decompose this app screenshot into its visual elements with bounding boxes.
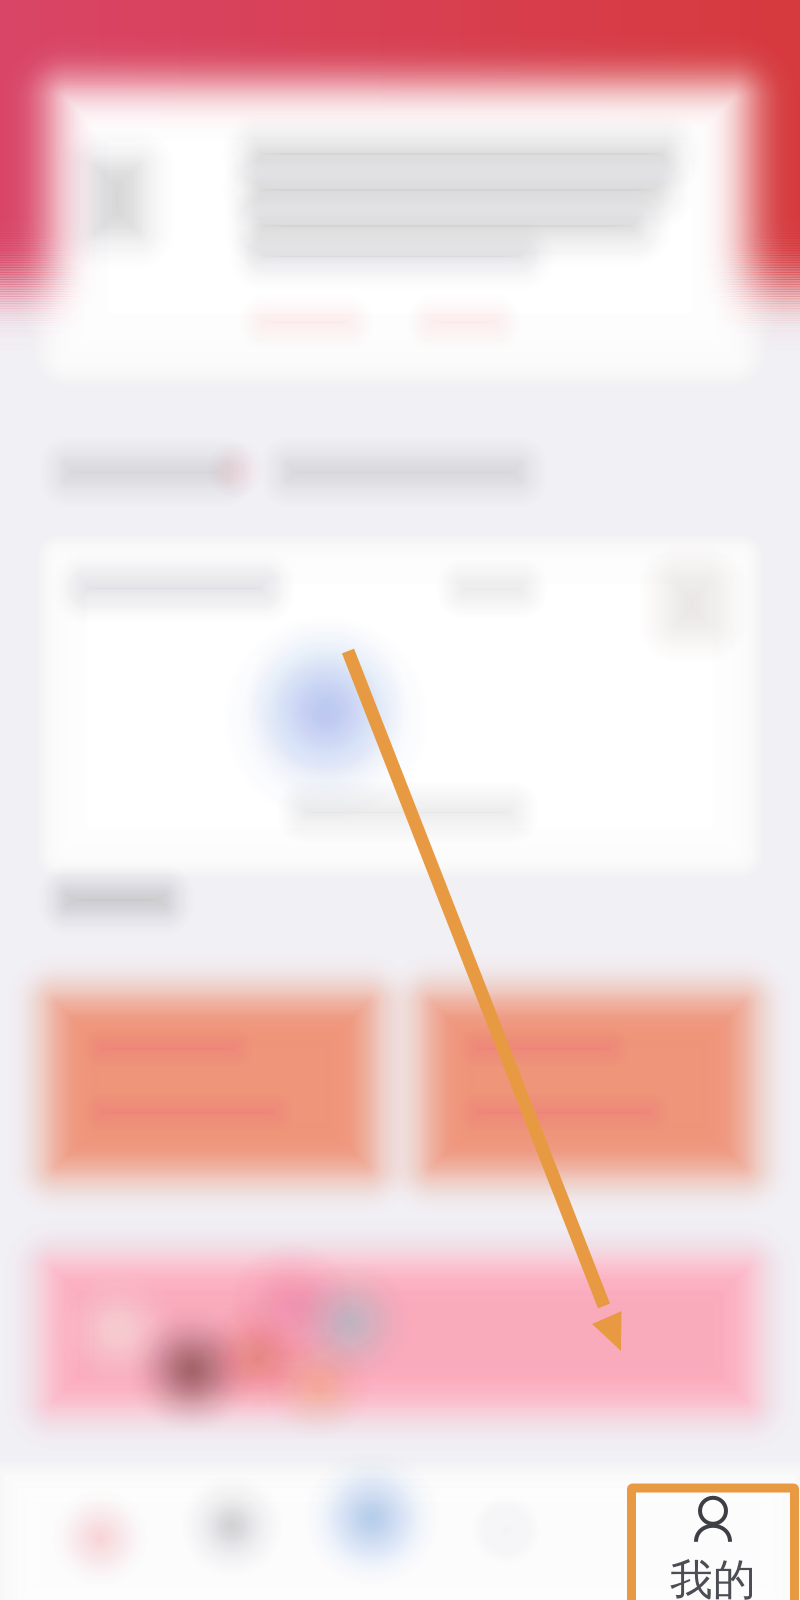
button[interactable]: 我的 — [325, 738, 475, 862]
button[interactable] — [184, 658, 616, 942]
button[interactable]: 分类 — [323, 723, 477, 877]
button[interactable]: 首页 — [326, 726, 474, 874]
button[interactable] — [229, 737, 571, 863]
button[interactable]: 消息 — [329, 729, 471, 871]
button[interactable] — [184, 658, 616, 942]
button[interactable] — [317, 743, 483, 857]
button[interactable] — [0, 673, 800, 927]
button[interactable] — [312, 742, 488, 858]
button[interactable] — [302, 742, 498, 858]
button[interactable]: 购物车 — [311, 711, 489, 889]
staticText: 我的 — [670, 1554, 756, 1600]
